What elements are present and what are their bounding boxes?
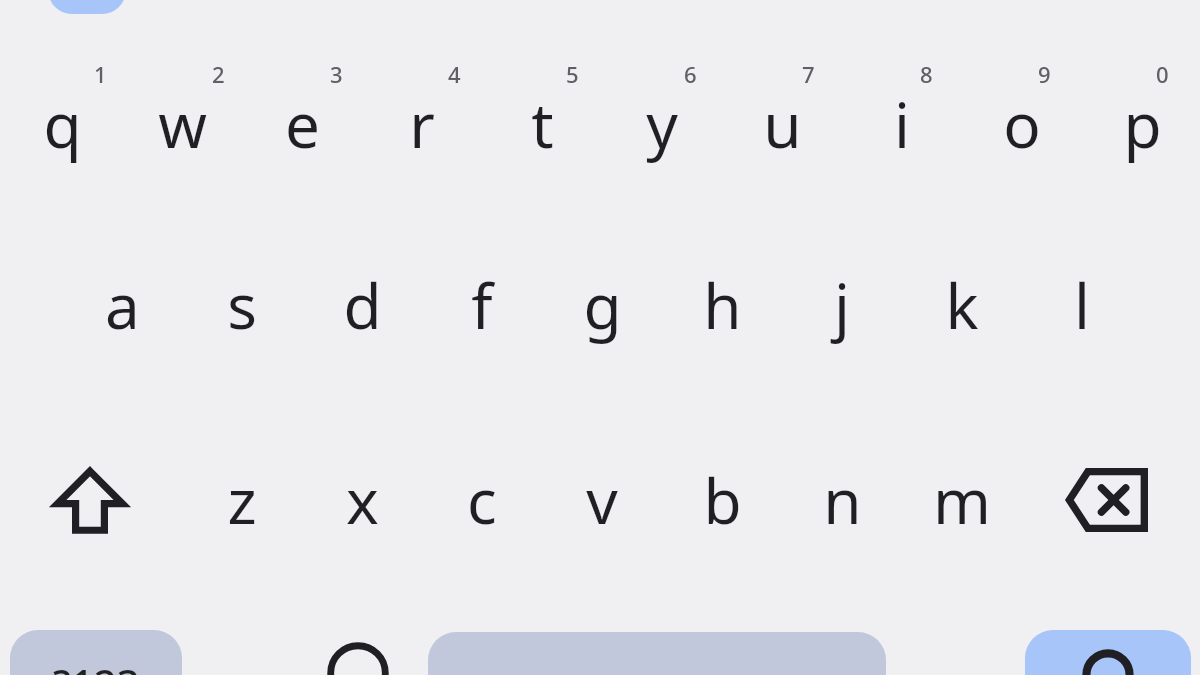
- staticText: t: [531, 82, 554, 166]
- staticText: l: [1074, 263, 1090, 347]
- button[interactable]: a: [62, 245, 182, 365]
- button[interactable]: f: [422, 245, 542, 365]
- staticText: w: [158, 82, 207, 166]
- staticText: y: [646, 82, 678, 166]
- button[interactable]: [48, 0, 126, 14]
- button[interactable]: r: [362, 64, 482, 184]
- button[interactable]: b: [662, 440, 782, 560]
- button[interactable]: j: [782, 245, 902, 365]
- button[interactable]: z: [182, 440, 302, 560]
- staticText: s: [227, 263, 257, 347]
- staticText: j: [834, 263, 850, 347]
- button[interactable]: Emoji: [300, 630, 416, 675]
- button[interactable]: o: [962, 64, 1082, 184]
- staticText: v: [586, 458, 618, 542]
- staticText: p: [1123, 82, 1162, 166]
- button[interactable]: y: [602, 64, 722, 184]
- staticText: e: [285, 82, 320, 166]
- staticText: g: [583, 263, 622, 347]
- button[interactable]: k: [902, 245, 1022, 365]
- staticText: r: [409, 82, 435, 166]
- button[interactable]: l: [1022, 245, 1142, 365]
- button[interactable]: x: [302, 440, 422, 560]
- staticText: x: [346, 458, 379, 542]
- button[interactable]: Space: [428, 632, 886, 675]
- staticText: f: [471, 263, 493, 347]
- button[interactable]: i: [842, 64, 962, 184]
- staticText: q: [43, 82, 82, 166]
- staticText: b: [703, 458, 742, 542]
- button[interactable]: e: [242, 64, 362, 184]
- button[interactable]: w: [122, 64, 242, 184]
- staticText: m: [933, 458, 991, 542]
- button[interactable]: Enter: [1025, 630, 1191, 675]
- button[interactable]: u: [722, 64, 842, 184]
- staticText: 9: [1038, 59, 1051, 89]
- staticText: d: [343, 263, 382, 347]
- button[interactable]: Shift: [30, 440, 150, 560]
- button[interactable]: q: [2, 64, 122, 184]
- staticText: o: [1003, 82, 1041, 166]
- staticText: i: [894, 82, 910, 166]
- staticText: 7: [802, 59, 815, 89]
- staticText: n: [823, 458, 862, 542]
- staticText: 2: [212, 59, 225, 89]
- button[interactable]: d: [302, 245, 422, 365]
- button[interactable]: t: [482, 64, 602, 184]
- staticText: 3: [330, 59, 343, 89]
- staticText: 0: [1156, 59, 1169, 89]
- staticText: 4: [448, 59, 461, 89]
- staticText: ?123: [53, 656, 140, 675]
- button[interactable]: n: [782, 440, 902, 560]
- button[interactable]: p: [1082, 64, 1200, 184]
- staticText: 5: [566, 59, 579, 89]
- staticText: z: [227, 458, 257, 542]
- staticText: 8: [920, 59, 933, 89]
- staticText: u: [763, 82, 802, 166]
- button[interactable]: v: [542, 440, 662, 560]
- staticText: c: [467, 458, 497, 542]
- button[interactable]: h: [662, 245, 782, 365]
- button[interactable]: c: [422, 440, 542, 560]
- button[interactable]: m: [902, 440, 1022, 560]
- button[interactable]: g: [542, 245, 662, 365]
- button[interactable]: Backspace: [1045, 440, 1165, 560]
- staticText: h: [703, 263, 742, 347]
- staticText: 6: [684, 59, 697, 89]
- staticText: k: [945, 263, 979, 347]
- button[interactable]: ?123: [10, 630, 182, 675]
- staticText: 1: [94, 59, 107, 89]
- button[interactable]: s: [182, 245, 302, 365]
- staticText: a: [105, 263, 140, 347]
